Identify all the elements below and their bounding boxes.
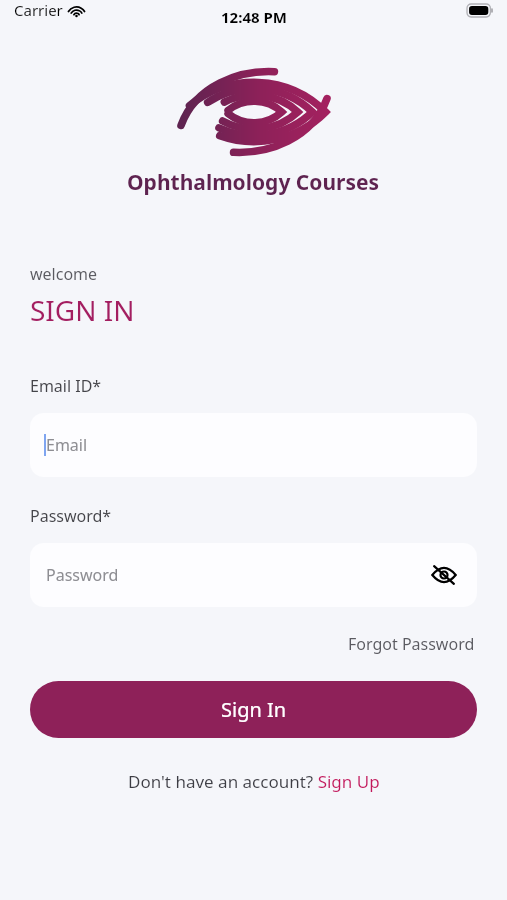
button[interactable]: Forgot Password bbox=[346, 629, 477, 659]
staticText: Carrier bbox=[14, 0, 63, 20]
button[interactable]: Sign In bbox=[30, 681, 477, 738]
button[interactable]: Show password bbox=[429, 560, 459, 590]
staticText: Password* bbox=[30, 505, 112, 527]
button[interactable]: Don't have an account? Sign Up bbox=[124, 768, 384, 795]
staticText: Forgot Password bbox=[348, 633, 475, 655]
staticText: SIGN IN bbox=[30, 291, 135, 329]
staticText: Password bbox=[46, 564, 119, 586]
staticText: welcome bbox=[30, 263, 98, 285]
staticText: Email ID* bbox=[30, 375, 102, 397]
button[interactable]: Email bbox=[30, 413, 477, 477]
staticText: 12:48 PM bbox=[221, 7, 287, 27]
staticText: Email bbox=[46, 434, 88, 456]
staticText: Ophthalmology Courses bbox=[127, 168, 380, 197]
staticText: Don't have an account? Sign Up bbox=[128, 770, 380, 793]
button[interactable]: Password bbox=[30, 543, 477, 607]
staticText: Sign In bbox=[221, 696, 287, 723]
